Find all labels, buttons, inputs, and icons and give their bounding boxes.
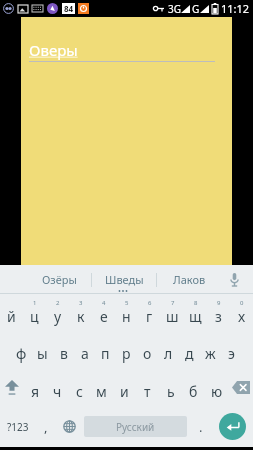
staticText: б: [189, 382, 198, 401]
staticText: ф: [16, 344, 27, 363]
staticText: о: [143, 344, 152, 363]
staticText: ж: [205, 344, 216, 363]
staticText: 0: [240, 299, 244, 307]
button[interactable]: а: [74, 331, 95, 368]
staticText: 11:12: [221, 1, 250, 16]
staticText: к: [77, 307, 85, 326]
button[interactable]: 2: [46, 294, 69, 331]
button[interactable]: Change language: [56, 406, 82, 447]
staticText: Шведы: [105, 272, 144, 287]
staticText: р: [122, 344, 131, 363]
staticText: х: [238, 307, 246, 326]
button[interactable]: м: [90, 368, 113, 406]
staticText: у: [54, 307, 62, 326]
staticText: п: [101, 344, 110, 363]
staticText: в: [60, 344, 68, 363]
staticText: 4: [102, 299, 106, 307]
staticText: ю: [211, 382, 223, 401]
staticText: э: [228, 344, 235, 363]
button[interactable]: 4: [92, 294, 115, 331]
staticText: а: [81, 344, 89, 363]
staticText: Русский: [116, 420, 155, 434]
button[interactable]: ы: [32, 331, 53, 368]
staticText: 3G: [168, 2, 181, 16]
button[interactable]: ю: [205, 368, 228, 406]
button[interactable]: т: [136, 368, 159, 406]
button[interactable]: Voice input: [221, 265, 247, 294]
button[interactable]: ч: [46, 368, 68, 406]
button[interactable]: 7: [161, 294, 184, 331]
staticText: м: [96, 382, 107, 401]
button[interactable]: ж: [200, 331, 221, 368]
staticText: 7: [171, 299, 175, 307]
staticText: 3: [79, 299, 83, 307]
button[interactable]: й: [0, 294, 23, 331]
button[interactable]: Русский: [84, 416, 187, 437]
staticText: н: [122, 307, 131, 326]
button[interactable]: в: [53, 331, 74, 368]
staticText: Лаков: [173, 272, 206, 287]
button[interactable]: 5: [115, 294, 138, 331]
button[interactable]: с: [68, 368, 90, 406]
button[interactable]: ь: [159, 368, 182, 406]
button[interactable]: 3: [69, 294, 92, 331]
button[interactable]: 6: [138, 294, 161, 331]
staticText: й: [7, 307, 16, 326]
staticText: 8: [194, 299, 198, 307]
staticText: .: [199, 418, 203, 436]
button[interactable]: 8: [184, 294, 207, 331]
button[interactable]: Оверы: [21, 17, 232, 265]
staticText: щ: [189, 307, 202, 326]
button[interactable]: Shift: [0, 368, 24, 406]
staticText: г: [146, 307, 153, 326]
staticText: G: [192, 2, 200, 16]
button[interactable]: и: [113, 368, 136, 406]
button[interactable]: 1: [23, 294, 46, 331]
staticText: 2: [56, 299, 60, 307]
staticText: 84: [64, 3, 74, 14]
staticText: ш: [166, 307, 179, 326]
staticText: ,: [44, 418, 48, 436]
button[interactable]: ?123: [0, 406, 36, 447]
staticText: я: [31, 382, 40, 401]
staticText: т: [144, 382, 151, 401]
button[interactable]: п: [95, 331, 116, 368]
staticText: ч: [53, 382, 62, 401]
staticText: 9: [217, 299, 221, 307]
staticText: Озёры: [42, 272, 77, 287]
button[interactable]: Backspace: [228, 368, 253, 406]
staticText: ы: [37, 344, 48, 363]
button[interactable]: Лаков: [157, 265, 221, 294]
staticText: Оверы: [29, 40, 78, 60]
button[interactable]: Шведы: [92, 265, 156, 294]
button[interactable]: 9: [207, 294, 230, 331]
button[interactable]: ф: [11, 331, 32, 368]
button[interactable]: Enter: [219, 413, 246, 440]
staticText: ц: [30, 307, 39, 326]
staticText: ?123: [7, 420, 29, 434]
button[interactable]: л: [158, 331, 179, 368]
button[interactable]: о: [137, 331, 158, 368]
staticText: и: [120, 382, 129, 401]
staticText: 5: [125, 299, 129, 307]
staticText: е: [100, 307, 108, 326]
staticText: ь: [167, 382, 175, 401]
button[interactable]: б: [182, 368, 205, 406]
button[interactable]: р: [116, 331, 137, 368]
button[interactable]: ,: [36, 406, 56, 447]
staticText: л: [164, 344, 173, 363]
staticText: 1: [33, 299, 37, 307]
button[interactable]: Озёры: [28, 265, 91, 294]
staticText: з: [215, 307, 222, 326]
button[interactable]: я: [24, 368, 46, 406]
button[interactable]: э: [221, 331, 242, 368]
staticText: с: [76, 382, 83, 401]
button[interactable]: .: [189, 406, 212, 447]
button[interactable]: 0: [230, 294, 253, 331]
button[interactable]: д: [179, 331, 200, 368]
staticText: 6: [148, 299, 152, 307]
staticText: д: [185, 344, 194, 363]
